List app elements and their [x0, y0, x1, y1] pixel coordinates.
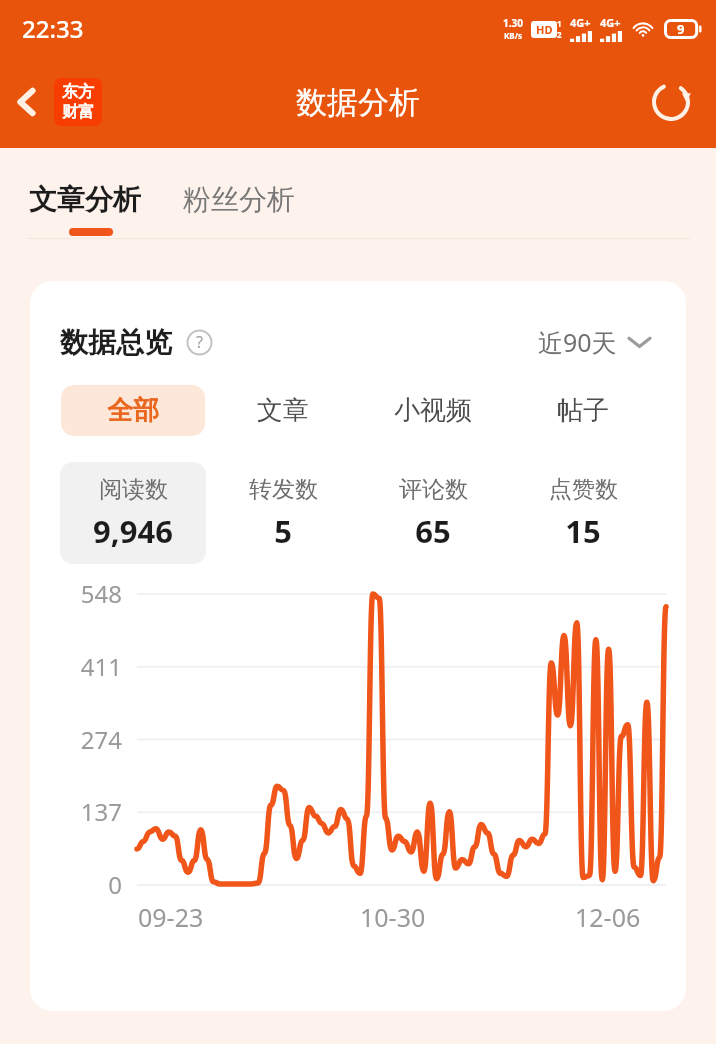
staticText: HD [536, 22, 553, 37]
staticText: 1 [557, 18, 562, 29]
staticText: 数据分析 [296, 83, 420, 122]
staticText: 411 [30, 650, 122, 683]
staticText: 9 [677, 20, 685, 38]
staticText: 15 [565, 510, 601, 552]
staticText: KB/s [504, 30, 522, 41]
button[interactable]: 文章 [211, 385, 355, 436]
button[interactable]: 文章分析 [26, 176, 144, 223]
button[interactable]: Dongfang Fortune [54, 78, 102, 126]
staticText: 粉丝分析 [183, 182, 295, 217]
button[interactable]: 阅读数 [60, 462, 206, 564]
button[interactable]: Refresh [642, 73, 700, 131]
staticText: 点赞数 [549, 475, 618, 504]
button[interactable]: 评论数 [360, 462, 506, 564]
staticText: 4G+ [600, 15, 621, 30]
staticText: 5 [274, 510, 292, 552]
button[interactable]: 粉丝分析 [180, 176, 298, 223]
staticText: 12-06 [575, 900, 641, 934]
staticText: 帖子 [557, 394, 609, 427]
staticText: 9,946 [93, 510, 173, 552]
staticText: 09-23 [138, 900, 204, 934]
staticText: 274 [30, 723, 122, 756]
staticText: 转发数 [249, 475, 318, 504]
staticText: 65 [415, 510, 451, 552]
staticText: ? [196, 331, 203, 353]
staticText: 文章分析 [29, 182, 141, 217]
staticText: 137 [30, 795, 122, 828]
staticText: 10-30 [360, 900, 426, 934]
staticText: 1.30 [503, 16, 523, 30]
staticText: 数据总览 [60, 325, 172, 360]
staticText: 全部 [107, 394, 159, 427]
staticText: 阅读数 [99, 475, 168, 504]
staticText: 2 [557, 29, 562, 40]
staticText: 东方 [62, 82, 94, 102]
staticText: 评论数 [399, 475, 468, 504]
button[interactable]: 近90天 [532, 319, 656, 365]
button[interactable]: 小视频 [361, 385, 505, 436]
button[interactable]: 全部 [61, 385, 205, 436]
staticText: 财富 [62, 102, 94, 122]
staticText: 22:33 [22, 12, 84, 45]
staticText: 4G+ [570, 15, 591, 30]
staticText: 近90天 [538, 325, 617, 359]
staticText: 小视频 [394, 394, 472, 427]
button[interactable]: Back [0, 75, 54, 129]
button[interactable]: 帖子 [511, 385, 655, 436]
button[interactable]: 点赞数 [510, 462, 656, 564]
staticText: 文章 [257, 394, 309, 427]
staticText: 0 [30, 868, 122, 901]
button[interactable]: Help [184, 327, 214, 357]
staticText: 548 [30, 577, 122, 610]
button[interactable]: 转发数 [210, 462, 356, 564]
